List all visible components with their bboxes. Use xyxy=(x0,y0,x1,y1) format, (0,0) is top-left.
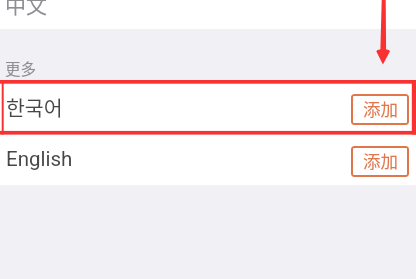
button[interactable]: Add English xyxy=(351,146,409,177)
staticText: English xyxy=(6,147,73,171)
button[interactable]: Add 한국어 xyxy=(351,94,409,125)
staticText: 添加 xyxy=(363,96,398,121)
button[interactable]: English xyxy=(0,133,416,185)
staticText: 更多 xyxy=(5,57,37,79)
staticText: 中文 xyxy=(5,0,47,18)
staticText: 添加 xyxy=(363,148,398,173)
staticText: 한국어 xyxy=(6,92,63,122)
button[interactable]: 한국어 xyxy=(0,81,416,133)
button[interactable]: 中文 xyxy=(0,0,416,29)
